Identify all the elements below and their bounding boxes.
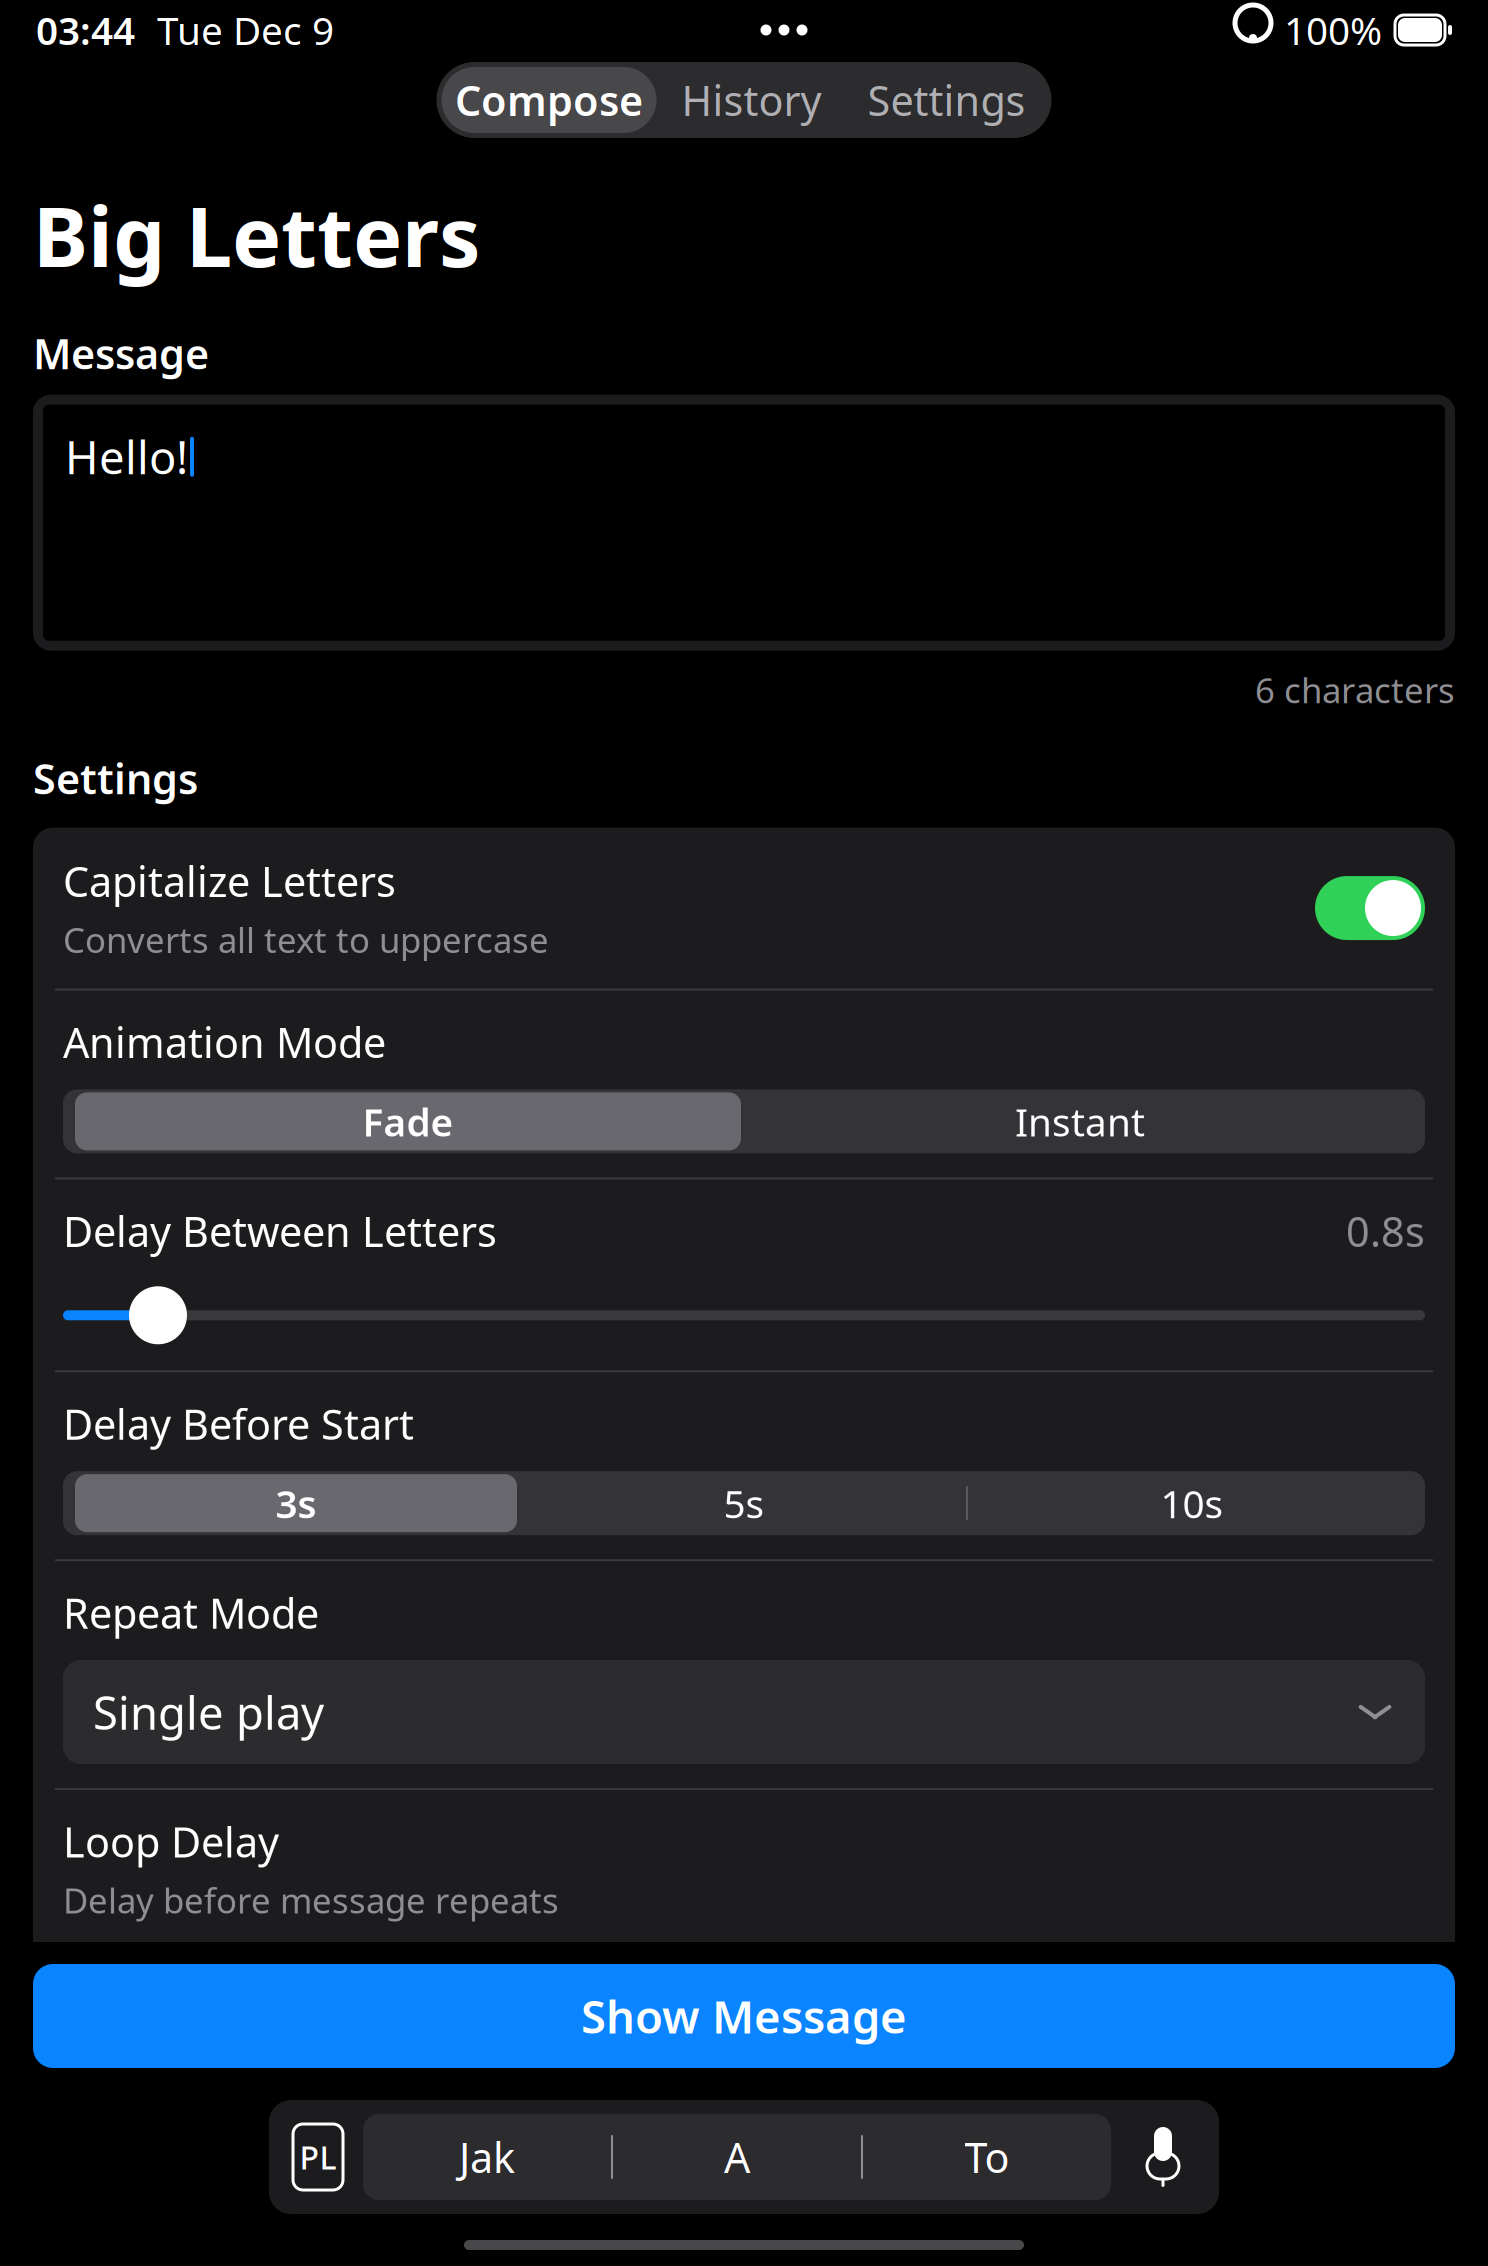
button[interactable]: Dictation <box>1127 2114 1199 2200</box>
staticText: Settings <box>33 751 198 806</box>
staticText: Show Message <box>581 1986 907 2046</box>
button[interactable]: Jak <box>363 2114 611 2200</box>
staticText: To <box>964 2130 1009 2184</box>
staticText: Compose <box>455 73 643 127</box>
button[interactable]: Compose <box>441 67 656 133</box>
button[interactable]: Instant <box>744 1089 1416 1153</box>
button[interactable]: 10s <box>968 1471 1416 1535</box>
staticText: 3s <box>275 1477 316 1529</box>
staticText: Delay before message repeats <box>63 1877 559 1923</box>
button[interactable]: 5s <box>520 1471 968 1535</box>
staticText: Settings <box>867 73 1025 127</box>
staticText: PL <box>299 2136 336 2178</box>
staticText: 6 characters <box>1255 667 1455 713</box>
button[interactable]: Show Message <box>33 1964 1455 2068</box>
staticText: 2x <box>453 1949 497 2001</box>
staticText: Tue Dec 9 <box>157 4 334 56</box>
button[interactable]: Settings <box>846 67 1046 133</box>
button[interactable]: Capitalize Letters <box>33 828 1455 988</box>
staticText: 100% <box>1284 4 1382 56</box>
button[interactable]: 1x <box>71 1943 340 2007</box>
staticText: Fade <box>362 1096 453 1147</box>
button[interactable]: A <box>613 2114 861 2200</box>
staticText: 0.8s <box>1346 1203 1425 1258</box>
staticText: Single play <box>93 1682 324 1742</box>
button[interactable]: Keyboard language Polish <box>293 2124 343 2190</box>
button[interactable]: 10x <box>1147 1943 1416 2007</box>
staticText: Loop Delay <box>63 1814 279 1869</box>
staticText: Converts all text to uppercase <box>63 916 549 962</box>
button[interactable]: 3x <box>609 1943 878 2007</box>
staticText: 3x <box>723 1949 765 2001</box>
button[interactable]: Fade <box>72 1089 744 1153</box>
button[interactable]: Single play <box>63 1660 1425 1764</box>
staticText: Delay Between Letters <box>63 1203 497 1258</box>
staticText: 1x <box>185 1949 227 2001</box>
staticText: Message <box>33 326 209 381</box>
staticText: A <box>724 2130 750 2184</box>
staticText: 5s <box>723 1477 764 1529</box>
button[interactable]: 2x <box>340 1943 609 2007</box>
button[interactable] <box>63 1284 1425 1346</box>
staticText: Jak <box>459 2130 515 2184</box>
staticText: Hello! <box>65 427 188 487</box>
button[interactable]: To <box>863 2114 1111 2200</box>
staticText: 10s <box>1160 1477 1223 1529</box>
staticText: Big Letters <box>33 180 480 290</box>
button[interactable]: History <box>656 67 846 133</box>
staticText: Animation Mode <box>63 1014 386 1069</box>
staticText: 5x <box>992 1949 1034 2001</box>
button[interactable]: 3s <box>72 1471 520 1535</box>
staticText: 03:44 <box>36 4 135 56</box>
staticText: Repeat Mode <box>63 1585 319 1640</box>
staticText: 10x <box>1250 1949 1314 2001</box>
staticText: Instant <box>1015 1096 1145 1147</box>
staticText: Delay Before Start <box>63 1396 414 1451</box>
button[interactable]: 5x <box>878 1943 1147 2007</box>
staticText: History <box>681 73 821 127</box>
staticText: Capitalize Letters <box>63 854 396 908</box>
